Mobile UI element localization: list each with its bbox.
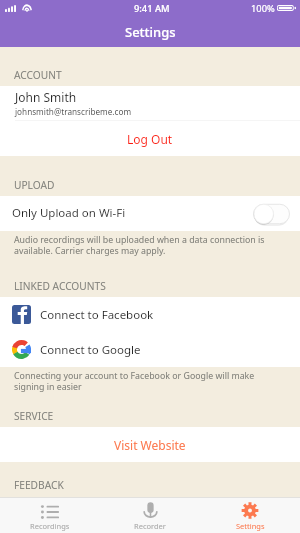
staticText: FEEDBACK [14,478,64,492]
staticText: 100% [251,2,275,15]
staticText: 9:41 AM [134,2,170,15]
staticText: Log Out [127,131,173,147]
staticText: Visit Website [114,437,186,453]
button[interactable]: John Smith [0,86,300,120]
staticText: Only Upload on Wi-Fi [12,205,126,221]
button[interactable]: Only Upload on Wi-Fi toggle [253,203,290,225]
staticText: Recordings [30,521,70,531]
button[interactable]: Settings [200,498,300,533]
button[interactable]: Connect to Google [0,332,300,367]
button[interactable]: Only Upload on Wi-Fi [0,196,300,231]
staticText: johnsmith@transcribeme.com [15,106,132,117]
staticText: Settings [236,521,265,531]
staticText: SERVICE [14,409,54,423]
staticText: UPLOAD [14,178,55,192]
staticText: John Smith [15,89,77,105]
button[interactable]: Connect to Facebook [0,297,300,332]
staticText: LINKED ACCOUNTS [14,279,106,293]
button[interactable]: Recordings [0,498,100,533]
staticText: Connecting your account to Facebook or G… [14,370,282,393]
staticText: Settings [125,23,176,41]
staticText: Connect to Facebook [40,307,154,323]
staticText: ACCOUNT [14,68,62,82]
staticText: Audio recordings will be uploaded when a… [14,234,282,257]
button[interactable]: Visit Website [0,427,300,462]
staticText: Recorder [134,521,166,531]
button[interactable]: Recorder [100,498,200,533]
button[interactable]: Log Out [0,121,300,156]
staticText: Connect to Google [40,342,141,358]
